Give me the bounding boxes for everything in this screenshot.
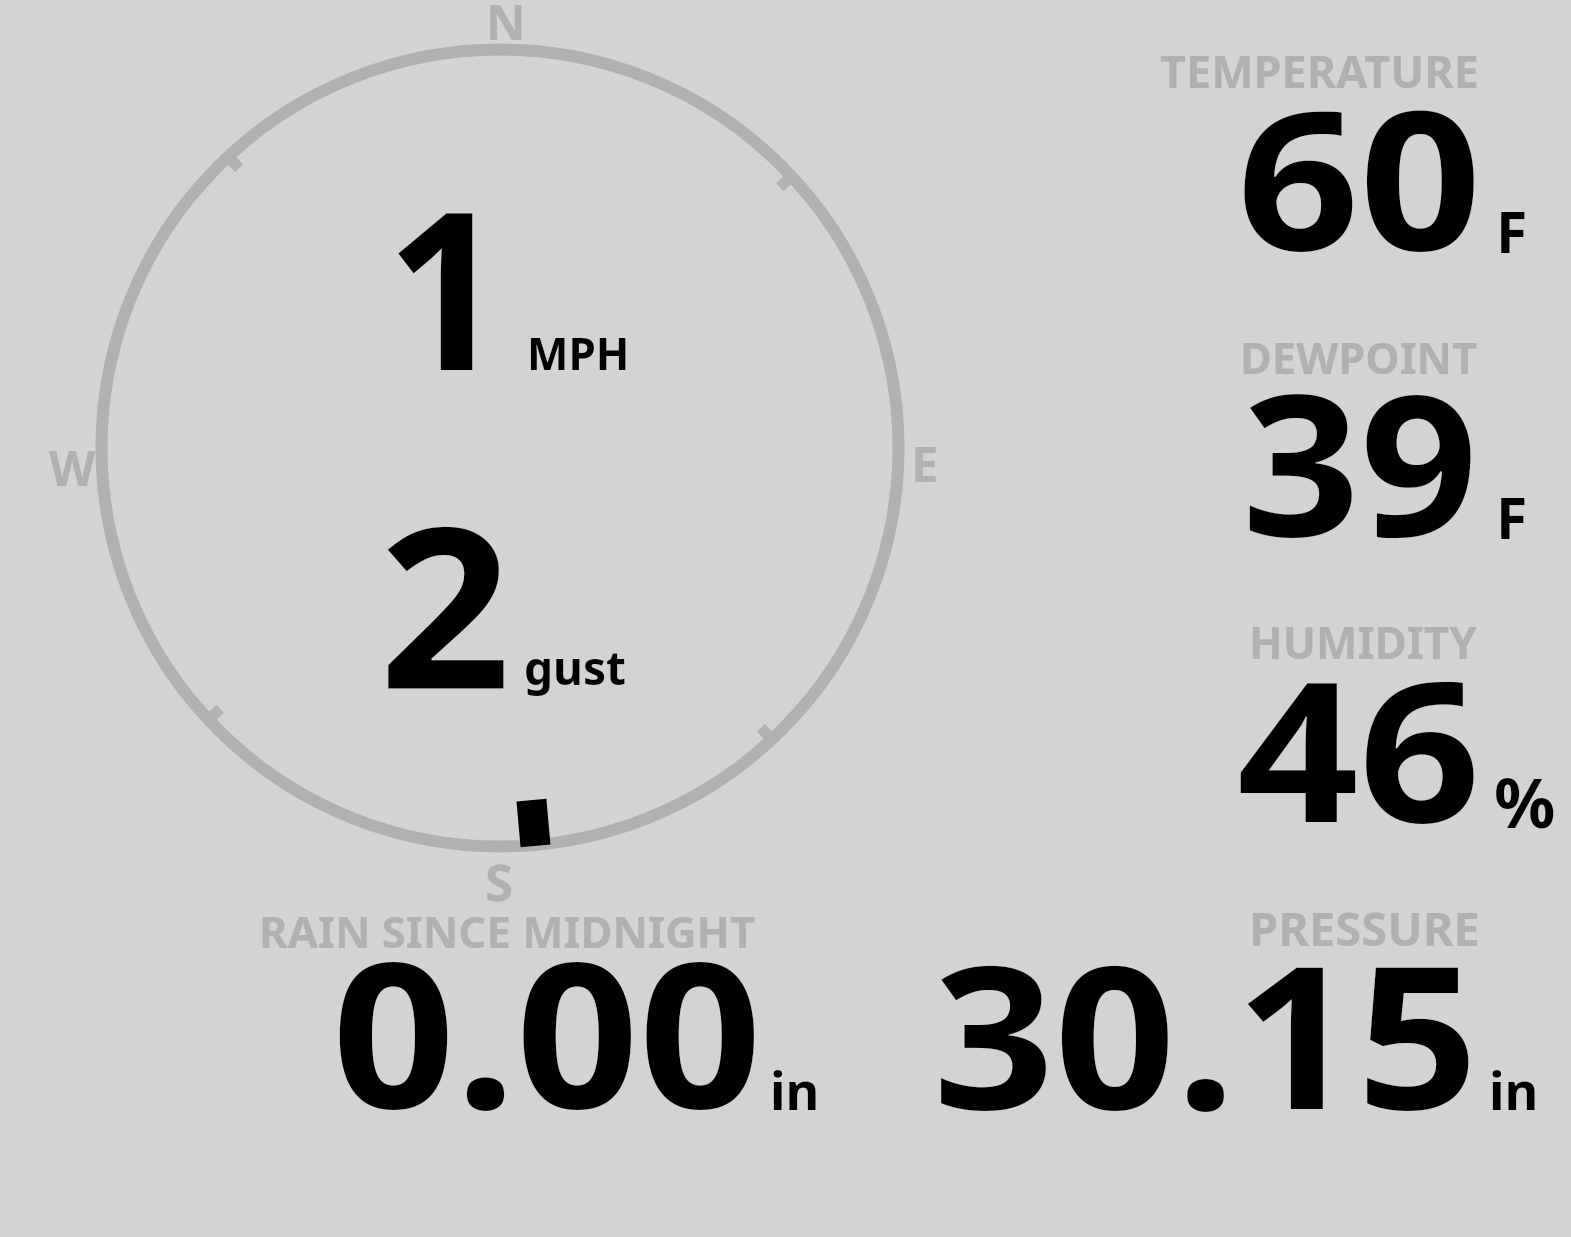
staticText: 46 <box>1237 615 1481 879</box>
staticText: E <box>911 430 939 497</box>
staticText: TEMPERATURE <box>1160 40 1479 101</box>
staticText: 1 <box>386 135 506 435</box>
staticText: F <box>1496 192 1528 270</box>
staticText: in <box>770 1054 820 1125</box>
staticText: N <box>486 0 526 55</box>
button[interactable]: Pressure 30.15 inches <box>925 902 1540 1121</box>
staticText: 0.00 <box>332 893 762 1167</box>
staticText: MPH <box>527 323 630 383</box>
staticText: % <box>1494 755 1556 848</box>
staticText: 2 <box>379 451 511 753</box>
staticText: S <box>485 846 514 915</box>
button[interactable]: Temperature 60 degrees Fahrenheit <box>1150 46 1550 261</box>
staticText: 60 <box>1237 44 1482 307</box>
staticText: PRESSURE <box>1249 896 1480 960</box>
staticText: W <box>49 435 96 500</box>
staticText: HUMIDITY <box>1249 612 1477 672</box>
staticText: 39 <box>1242 326 1479 593</box>
staticText: in <box>1489 1054 1539 1125</box>
staticText: F <box>1496 478 1528 556</box>
button[interactable]: Dewpoint 39 degrees Fahrenheit <box>1150 332 1550 547</box>
staticText: RAIN SINCE MIDNIGHT <box>259 901 756 961</box>
button[interactable]: Rain since midnight 0.00 inches <box>255 906 825 1121</box>
button[interactable]: Wind speed 1 miles per hour <box>370 200 640 380</box>
button[interactable]: Wind gust 2 miles per hour <box>370 516 640 706</box>
staticText: DEWPOINT <box>1240 327 1478 386</box>
staticText: gust <box>524 636 627 699</box>
button[interactable]: Wind direction compass <box>89 37 911 859</box>
staticText: 30.15 <box>933 898 1479 1166</box>
button[interactable]: Humidity 46 percent <box>1150 617 1560 835</box>
